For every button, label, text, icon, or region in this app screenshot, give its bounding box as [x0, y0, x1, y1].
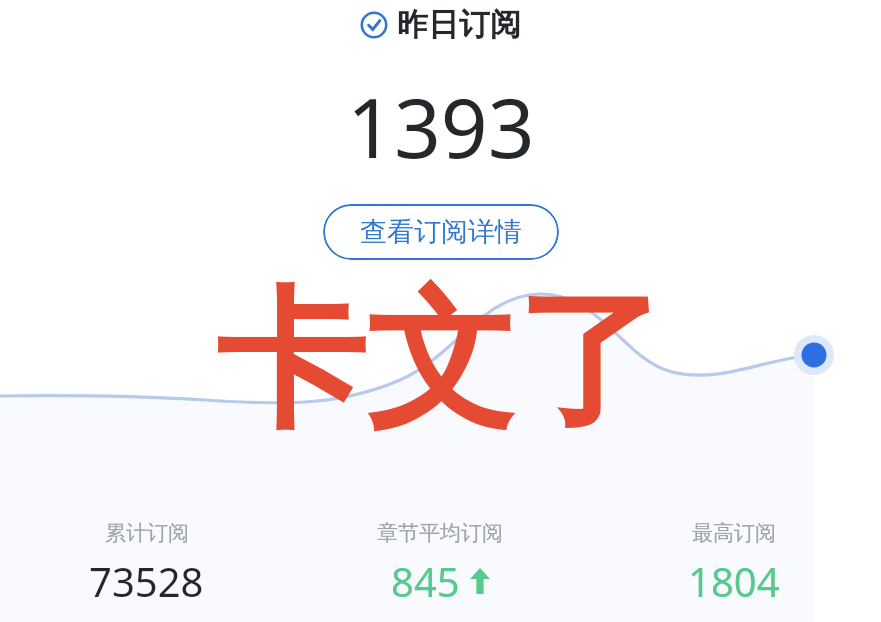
staticText: 73528 — [89, 554, 204, 608]
staticText: 昨日订阅 — [397, 5, 521, 44]
staticText: 最高订阅 — [692, 520, 776, 546]
staticText: 累计订阅 — [105, 520, 189, 546]
button[interactable]: 累计订阅 — [0, 520, 293, 608]
button[interactable]: 最高订阅 — [587, 520, 881, 608]
button[interactable]: 章节平均订阅 — [293, 520, 587, 608]
staticText: 查看订阅详情 — [360, 215, 522, 249]
staticText: 卡文了 — [0, 268, 881, 457]
staticText: 1804 — [688, 554, 780, 608]
staticText: 1393 — [347, 70, 535, 182]
staticText: 845 — [391, 554, 460, 608]
button[interactable]: 查看订阅详情 — [323, 204, 559, 260]
staticText: 章节平均订阅 — [377, 520, 503, 546]
